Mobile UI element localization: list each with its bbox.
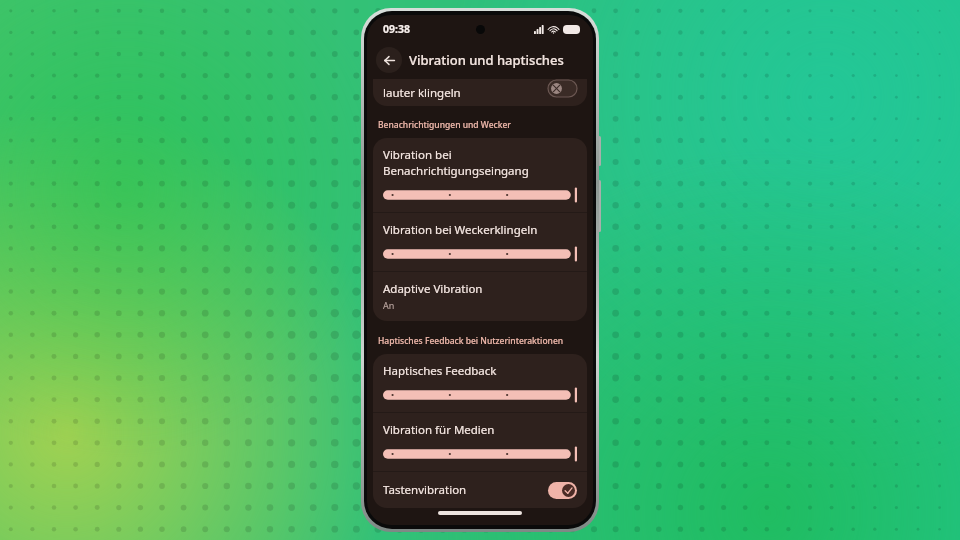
staticText: Benachrichtigungseingang [383,163,529,179]
staticText: An [383,299,395,311]
staticText: Haptisches Feedback [383,363,497,379]
staticText: Benachrichtigungen und Wecker [378,119,511,131]
staticText: Adaptive Vibration [383,281,483,297]
staticText: Tastenvibration [383,482,548,498]
button[interactable]: Adaptive Vibration [373,272,587,321]
staticText: 09:38 [383,22,410,36]
staticText: Vibration für Medien [383,422,495,438]
button[interactable]: Tastenvibration [373,472,587,508]
staticText: Vibration bei [383,147,452,163]
button[interactable]: Vibration für Medien [373,413,587,471]
staticText: Vibration und haptisches Fee… [409,51,593,69]
button[interactable]: Back [376,47,402,73]
button[interactable]: Vibration bei [373,138,587,212]
button[interactable]: Haptisches Feedback [373,354,587,412]
staticText: Haptisches Feedback bei Nutzerinteraktio… [378,335,564,347]
button[interactable]: Vibration bei Weckerklingeln [373,213,587,271]
staticText: lauter klingeln [383,85,461,101]
staticText: Vibration bei Weckerklingeln [383,222,538,238]
button[interactable]: lauter klingeln [373,79,587,106]
